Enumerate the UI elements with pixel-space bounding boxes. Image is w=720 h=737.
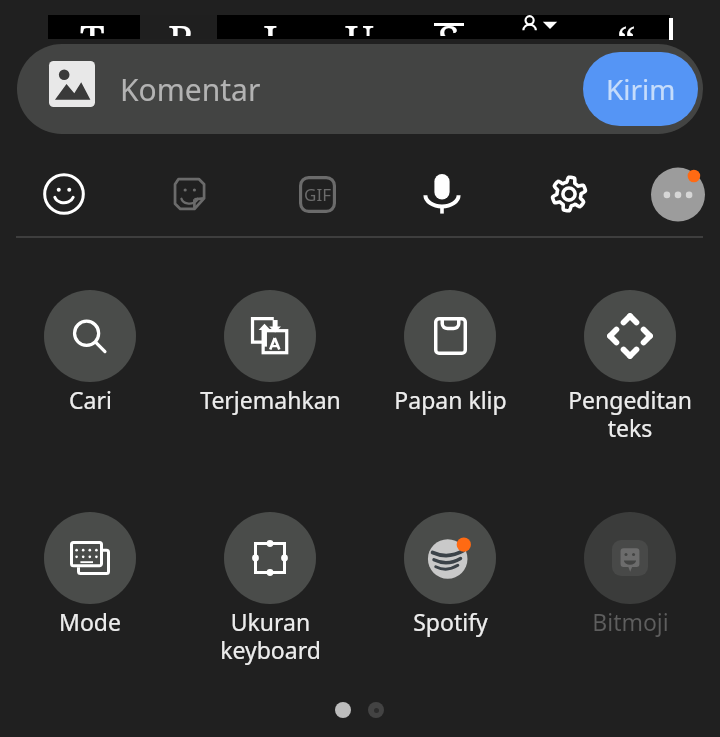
button[interactable]: More options — [648, 164, 708, 224]
button[interactable]: Pengeditan teks — [545, 290, 715, 444]
button[interactable]: T — [48, 15, 137, 39]
button[interactable]: Mode — [5, 512, 175, 637]
staticText: Terjemahkan — [200, 384, 341, 415]
button[interactable]: Stickers — [160, 164, 220, 224]
button[interactable]: Add image — [49, 61, 95, 107]
button[interactable]: Strikethrough — [404, 15, 493, 39]
button[interactable]: Text colour — [493, 15, 582, 39]
staticText: Komentar — [120, 69, 261, 110]
button[interactable]: Voice input — [412, 164, 472, 224]
button[interactable]: Cari — [5, 290, 175, 415]
button[interactable]: “ — [582, 15, 670, 39]
button[interactable]: Terjemahkan — [185, 290, 355, 415]
button[interactable]: Bitmoji — [545, 512, 715, 637]
staticText: Cari — [69, 384, 112, 415]
button[interactable]: Papan klip — [365, 290, 535, 415]
staticText: Pengeditan teks — [568, 384, 692, 444]
staticText: Bitmoji — [592, 606, 669, 637]
staticText: T — [80, 15, 105, 36]
staticText: Mode — [59, 606, 121, 637]
button[interactable]: Page 1 — [335, 702, 351, 718]
staticText: GIF — [304, 183, 331, 206]
button[interactable]: B — [137, 15, 226, 39]
button[interactable]: I — [226, 15, 315, 39]
staticText: Ukuran keyboard — [220, 606, 321, 666]
button[interactable]: Settings — [539, 164, 599, 224]
button[interactable]: Spotify — [365, 512, 535, 637]
button[interactable]: Emoji — [34, 164, 94, 224]
button[interactable]: Ukuran keyboard — [185, 512, 355, 666]
button[interactable]: GIF — [287, 164, 347, 224]
staticText: “ — [617, 15, 635, 36]
button[interactable]: Page 2 — [368, 702, 384, 718]
staticText: S — [438, 15, 460, 36]
staticText: Kirim — [606, 70, 676, 108]
button[interactable]: Kirim — [583, 52, 698, 126]
staticText: Spotify — [413, 606, 488, 637]
button[interactable]: Komentar — [117, 44, 577, 134]
button[interactable]: U — [315, 15, 404, 39]
staticText: I — [263, 15, 278, 36]
staticText: B — [168, 15, 195, 36]
staticText: Papan klip — [394, 384, 507, 415]
staticText: U — [345, 15, 374, 36]
